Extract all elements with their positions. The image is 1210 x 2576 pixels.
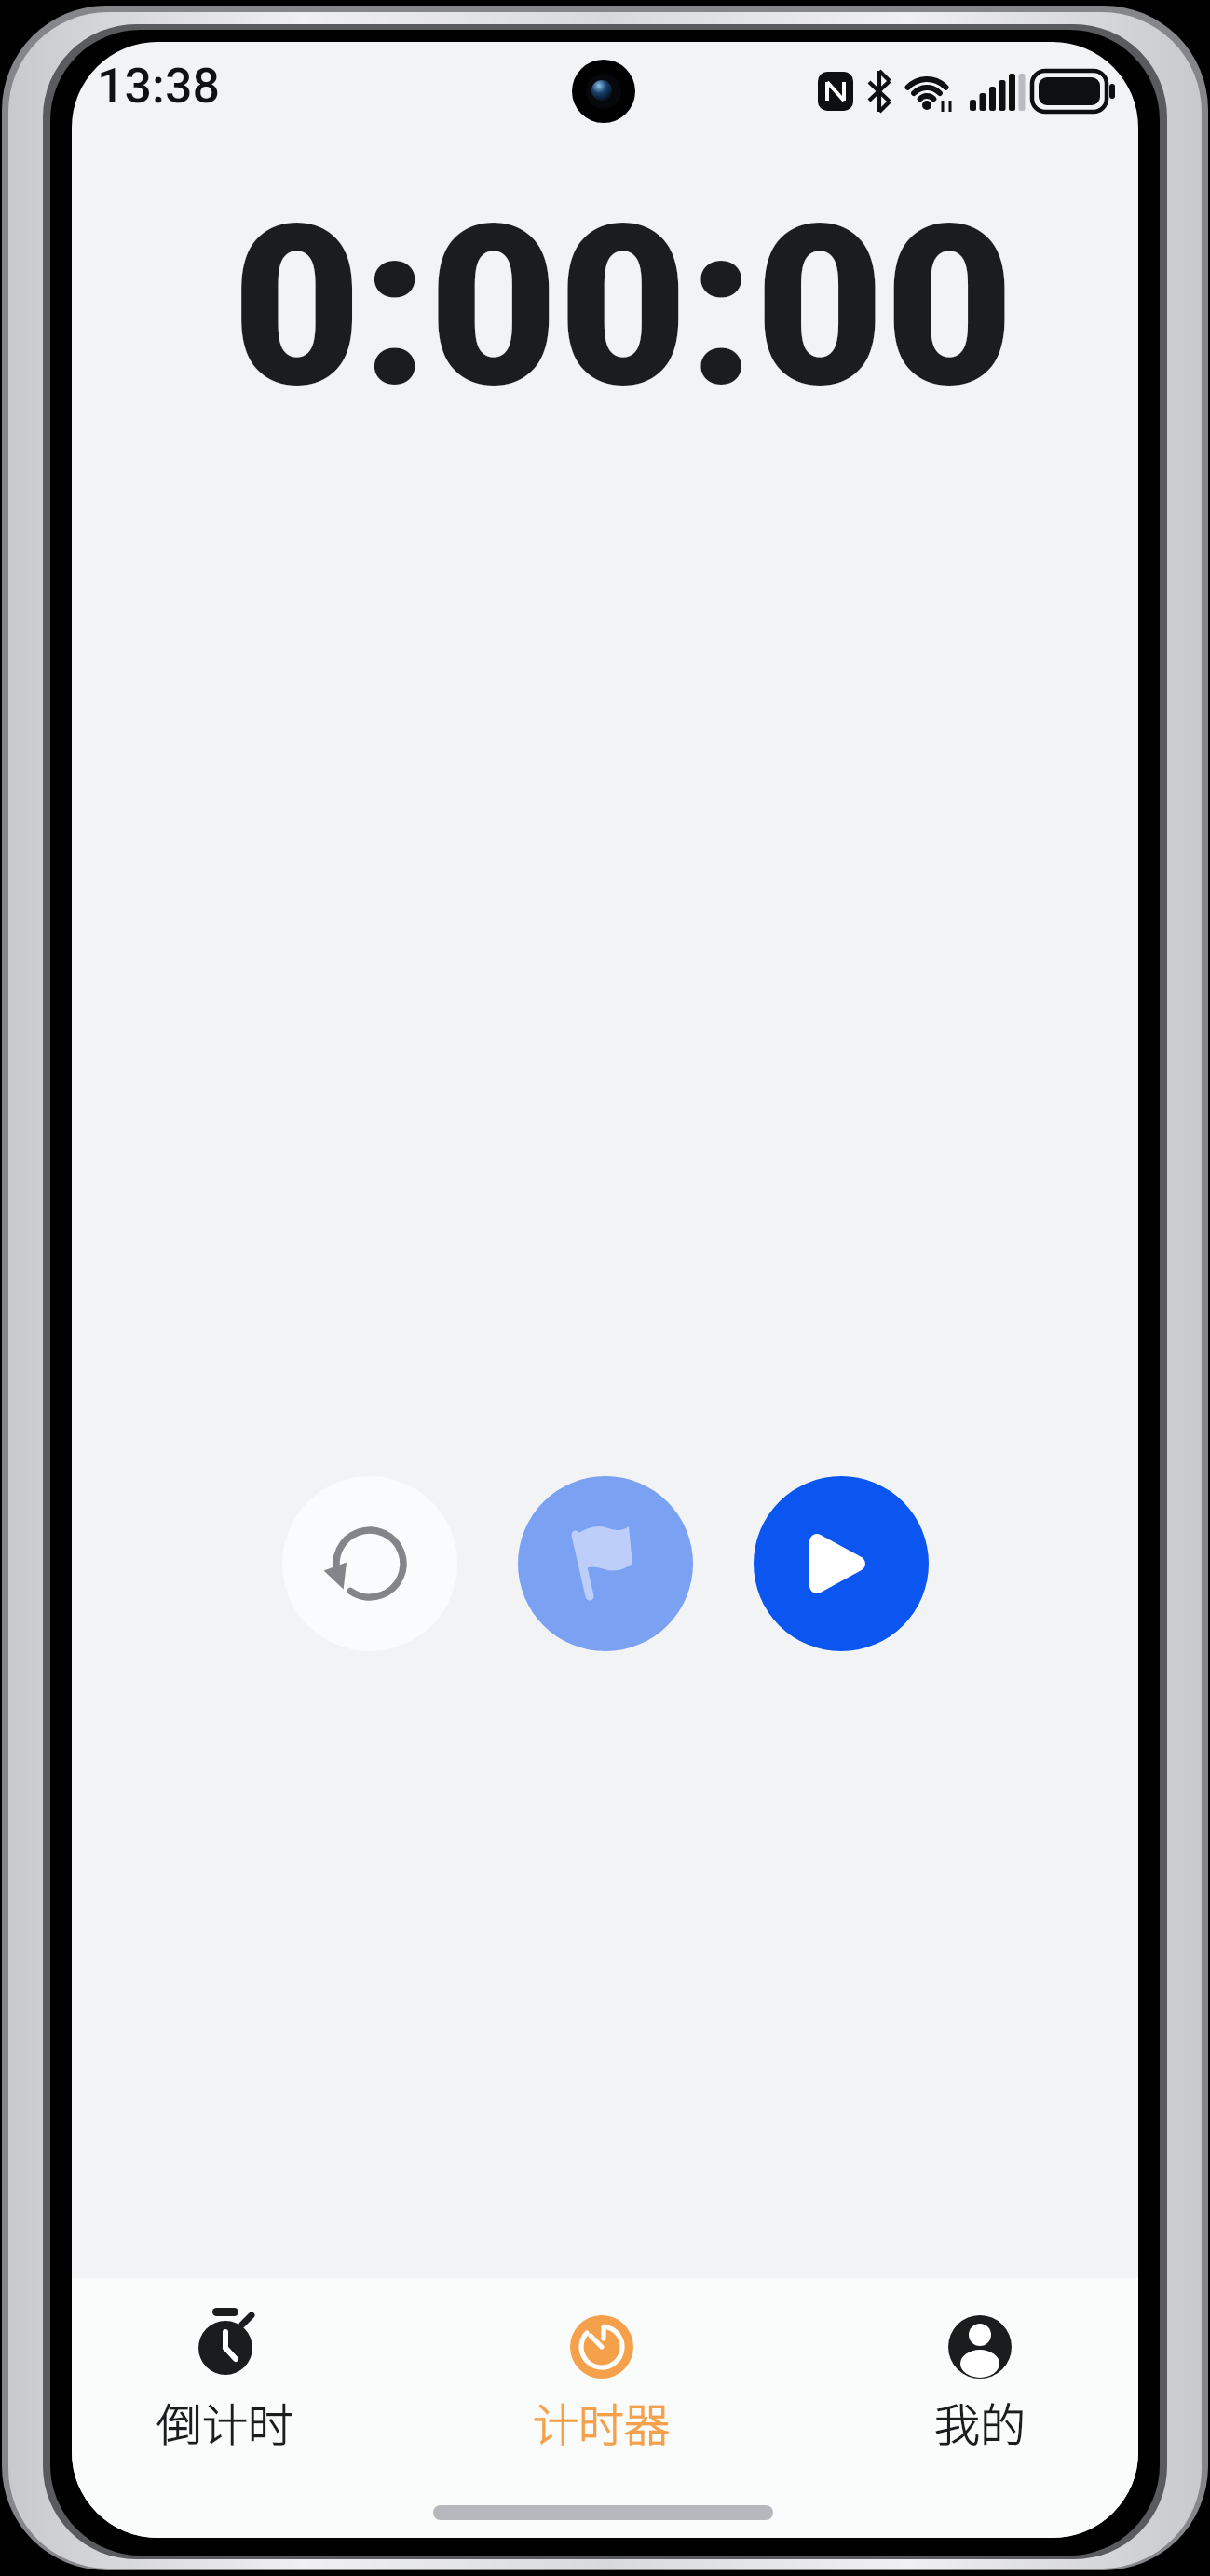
staticText: 0:00:00 [232,176,1014,438]
staticText: 计时器 [533,2389,671,2455]
staticText: 我的 [934,2389,1026,2455]
staticText: 倒计时 [156,2389,294,2455]
button[interactable]: 倒计时 [86,2291,365,2459]
staticText: 13:38 [97,58,221,115]
button[interactable]: 我的 [840,2291,1120,2459]
staticText: 计时器 [533,2389,671,2455]
button[interactable] [754,1476,929,1651]
staticText: 倒计时 [156,2389,294,2455]
staticText: 我的 [934,2389,1026,2455]
button[interactable] [282,1476,457,1651]
button[interactable]: 计时器 [462,2291,741,2459]
button[interactable] [518,1476,693,1651]
